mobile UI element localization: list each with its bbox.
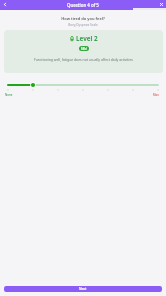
button[interactable]: Level 2 <box>4 30 163 73</box>
button[interactable]: Back <box>0 0 10 9</box>
button[interactable]: Close <box>156 0 166 9</box>
staticText: Level 2 <box>76 34 98 43</box>
staticText: Question 4 of 5 <box>67 2 99 8</box>
staticText: Next <box>79 287 87 291</box>
staticText: Mild <box>81 47 87 51</box>
staticText: Max <box>153 93 159 97</box>
staticText: Borg Dyspnea Scale <box>0 23 166 27</box>
button[interactable]: Next <box>4 286 162 292</box>
staticText: None <box>5 93 13 97</box>
staticText: Functioning well, fatigue does not usual… <box>8 57 159 62</box>
staticText: How tired do you feel? <box>0 16 166 21</box>
